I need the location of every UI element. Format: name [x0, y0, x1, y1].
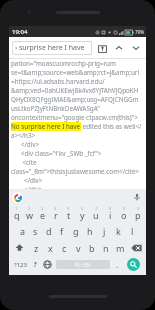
staticText: s [33, 225, 38, 237]
staticText: </div> [11, 176, 43, 185]
staticText: i [109, 209, 112, 221]
button[interactable]: c [57, 239, 71, 256]
staticText: <div class="f kv _SWb _fcf"> [11, 149, 102, 158]
staticText: q [14, 209, 20, 221]
button[interactable]: ?123 [11, 256, 30, 273]
button[interactable]: Voice input [131, 191, 143, 203]
staticText: </div> [11, 140, 40, 149]
button[interactable]: 4 [49, 205, 62, 222]
staticText: k [116, 225, 121, 237]
staticText: a [20, 225, 26, 237]
staticText: 7 [95, 206, 98, 211]
button[interactable]: v [71, 239, 85, 256]
staticText: v [76, 242, 81, 254]
button[interactable]: 7 [89, 205, 103, 222]
staticText: y [80, 209, 85, 221]
button[interactable]: 3 [36, 205, 49, 222]
staticText: e [40, 209, 46, 221]
button[interactable]: k [111, 222, 125, 239]
staticText: b [89, 242, 95, 254]
staticText: 1 [15, 206, 18, 211]
button[interactable]: PL • EN [56, 260, 110, 269]
button[interactable]: Backspace [127, 239, 145, 256]
button[interactable]: . [112, 256, 123, 273]
staticText: › surprise here I have [15, 43, 85, 53]
staticText: p [135, 209, 141, 221]
staticText: m [116, 242, 125, 254]
button[interactable]: x [43, 239, 57, 256]
staticText: =https://ui.adsabs.harvard.edu/ [11, 77, 105, 86]
button[interactable]: Switch language [41, 256, 54, 273]
staticText: se=t&amp;source=web&amp;rct=j&amp;url [11, 68, 140, 77]
button[interactable]: 2 [23, 205, 36, 222]
button[interactable]: Settings [30, 256, 41, 273]
staticText: z [34, 242, 39, 254]
button[interactable]: 0 [131, 205, 145, 222]
button[interactable]: Google search [12, 192, 23, 203]
button[interactable]: 8 [103, 205, 117, 222]
button[interactable]: d [42, 222, 55, 239]
staticText: pation="moascuomrochp-prig=rum [11, 59, 116, 68]
button[interactable]: z [29, 239, 43, 256]
button[interactable]: Previous match [111, 40, 126, 55]
staticText: l [131, 225, 134, 237]
staticText: 19:04 [12, 28, 28, 36]
button[interactable]: j [97, 222, 111, 239]
staticText: u [93, 209, 99, 221]
staticText: 4 [54, 206, 57, 211]
staticText: usLtkoPZjyFtNBnkOeAWASgA" [11, 104, 100, 113]
staticText: edited this as well</ [81, 122, 142, 131]
staticText: x [48, 242, 53, 254]
staticText: QHyDX8QFggIMAE&amp;usg=AFQjCNGGm [11, 95, 139, 104]
button[interactable]: › surprise here I have [12, 41, 92, 55]
staticText: &amp;ved=0ahUKEwjBk4vx6YjTAhVJQpoKH [11, 86, 139, 95]
staticText: . [116, 259, 119, 270]
staticText: 79% [135, 29, 144, 35]
staticText: ?123 [14, 261, 27, 269]
staticText: h [87, 225, 93, 237]
button[interactable]: Shift [10, 239, 29, 256]
staticText: f [60, 225, 64, 237]
staticText: r [54, 209, 58, 221]
button[interactable]: 6 [75, 205, 89, 222]
staticText: No surprise here I have [11, 122, 81, 131]
button[interactable]: b [85, 239, 99, 256]
staticText: n [103, 242, 109, 254]
button[interactable]: g [69, 222, 83, 239]
button[interactable]: l [125, 222, 139, 239]
staticText: 0 [137, 206, 140, 211]
button[interactable]: Open in browser [95, 41, 109, 55]
button[interactable]: m [113, 239, 127, 256]
staticText: 8 [109, 206, 112, 211]
staticText: 9 [123, 206, 126, 211]
staticText: </div> [11, 185, 43, 189]
staticText: PL • EN [75, 262, 91, 268]
staticText: a></h3> [11, 131, 36, 140]
button[interactable]: h [83, 222, 97, 239]
button[interactable]: Search [123, 256, 144, 273]
staticText: 3 [41, 206, 44, 211]
staticText: o [121, 209, 127, 221]
button[interactable]: 5 [62, 205, 75, 222]
staticText: d [46, 225, 52, 237]
staticText: t [67, 209, 71, 221]
button[interactable]: s [29, 222, 42, 239]
staticText: g [73, 225, 79, 237]
button[interactable]: n [99, 239, 113, 256]
staticText: class="_Rm">thisisjustawesome.com</cite> [11, 167, 140, 176]
staticText: 6 [81, 206, 84, 211]
staticText: <cite [11, 158, 37, 167]
button[interactable]: 9 [117, 205, 131, 222]
button[interactable]: f [55, 222, 69, 239]
button[interactable]: Next match [128, 40, 143, 55]
button[interactable]: a [16, 222, 29, 239]
staticText: c [62, 242, 67, 254]
button[interactable]: 1 [10, 205, 23, 222]
staticText: 2 [28, 206, 31, 211]
staticText: w [26, 209, 34, 221]
staticText: oncontextmenu="google ctpacw.cm(this)"> [11, 113, 138, 122]
staticText: 5 [67, 206, 70, 211]
staticText: j [103, 225, 106, 237]
